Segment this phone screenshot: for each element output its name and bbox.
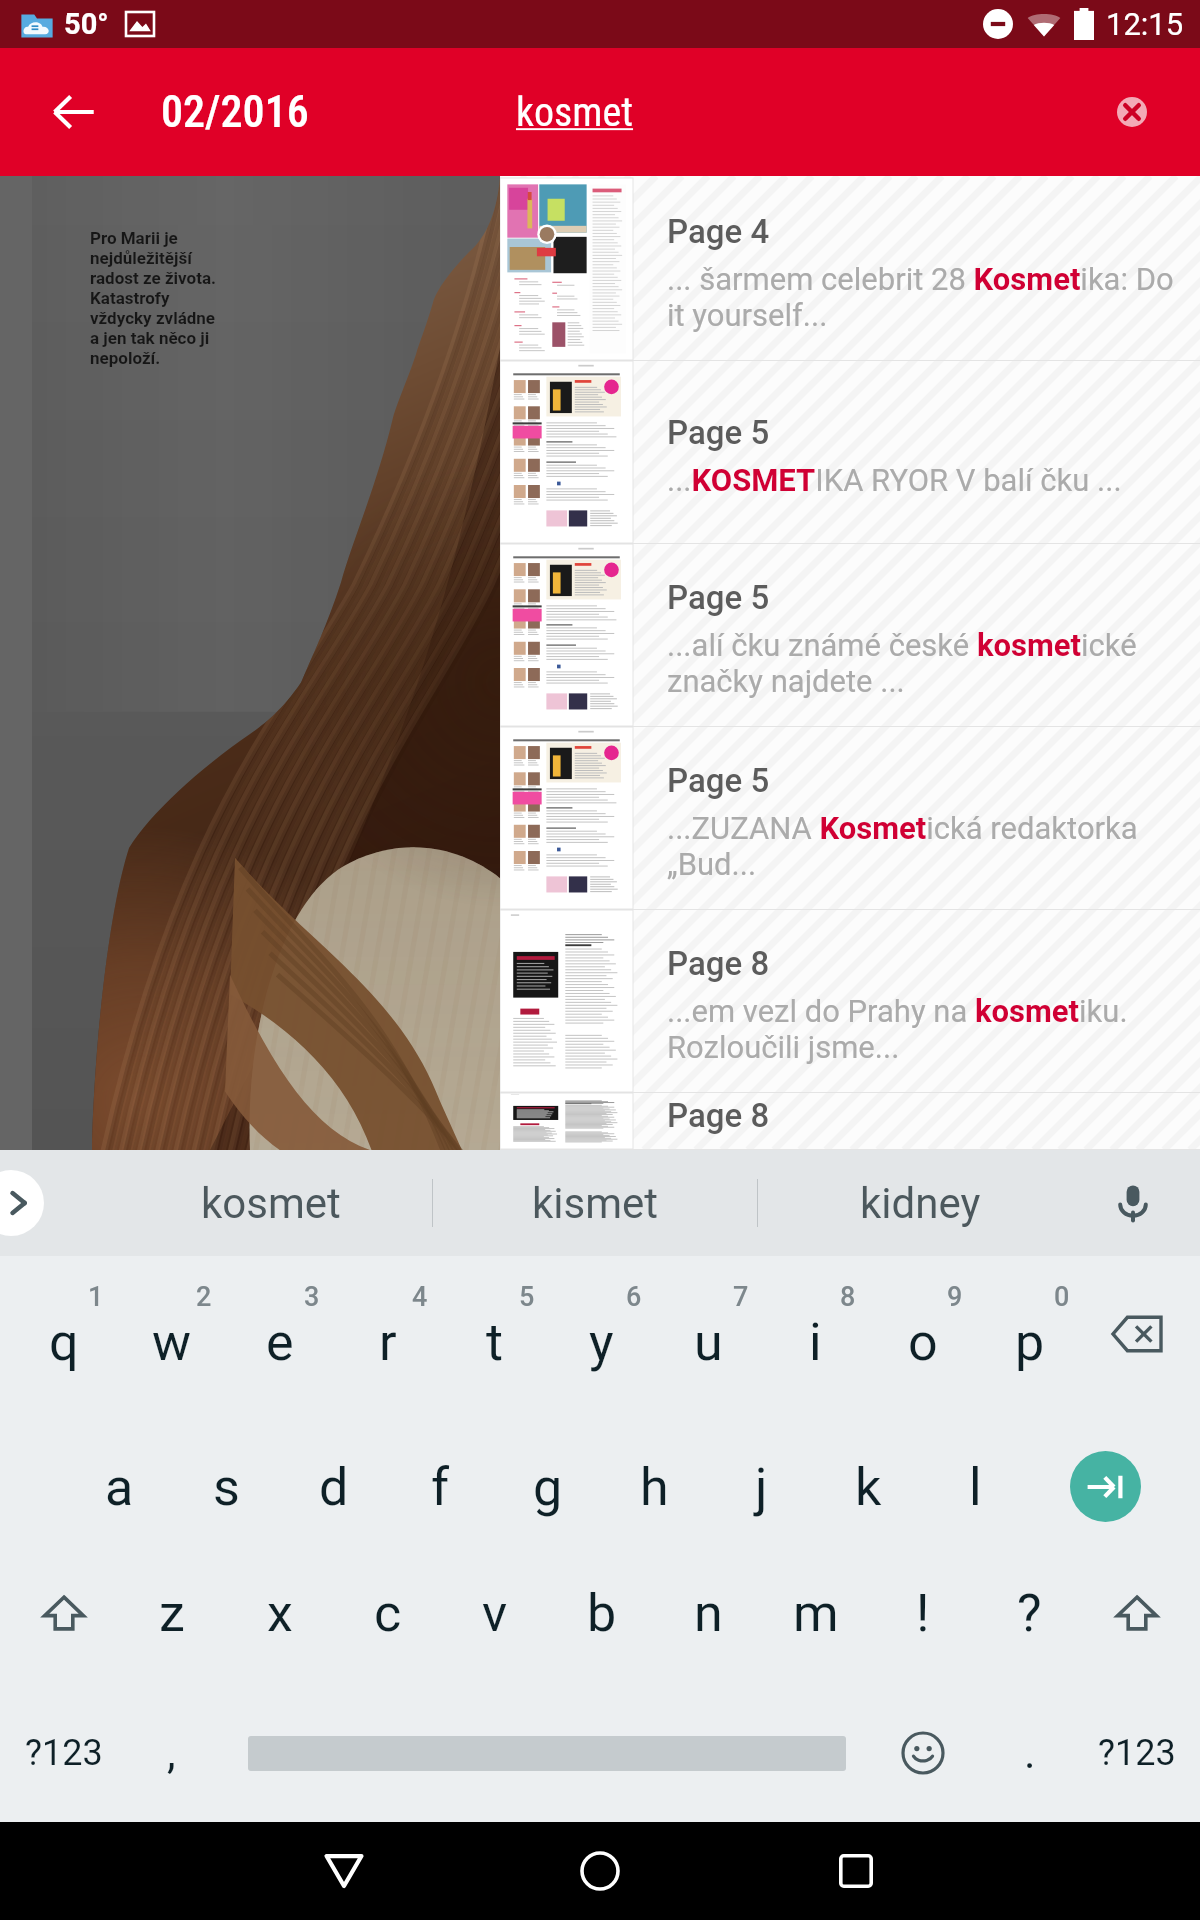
button[interactable]: kosmet — [109, 1150, 432, 1256]
button[interactable]: Backspace — [1083, 1256, 1190, 1412]
button[interactable]: Clear search — [1106, 86, 1158, 138]
staticText: ...alí čku známé české kosmetické značky… — [667, 627, 1180, 699]
button[interactable]: w — [118, 1256, 226, 1412]
staticText: u — [694, 1312, 723, 1373]
staticText: Pro Marii je nejdůležitější radost ze ži… — [90, 228, 217, 368]
button[interactable]: m — [762, 1550, 869, 1684]
button[interactable]: d — [280, 1412, 387, 1550]
button[interactable]: y — [548, 1256, 655, 1412]
staticText: ...ZUZANA Kosmetická redaktorka „Bud... — [667, 810, 1180, 882]
button[interactable]: v — [441, 1550, 548, 1684]
staticText: c — [374, 1583, 402, 1644]
staticText: kosmet — [516, 89, 634, 136]
button[interactable]: Page 8 — [500, 1093, 1200, 1150]
button[interactable]: , — [118, 1684, 225, 1822]
staticText: , — [167, 1727, 176, 1779]
staticText: 8 — [840, 1281, 856, 1313]
staticText: Page 5 — [667, 578, 770, 617]
staticText: 12:15 — [1106, 6, 1184, 42]
staticText: s — [213, 1457, 240, 1518]
staticText: i — [809, 1312, 822, 1373]
button[interactable]: t — [441, 1256, 548, 1412]
button[interactable]: Page 4 — [500, 178, 1200, 361]
staticText: e — [266, 1312, 294, 1373]
button[interactable]: More suggestions — [0, 1170, 44, 1236]
button[interactable]: r — [334, 1256, 441, 1412]
button[interactable]: n — [655, 1550, 762, 1684]
button[interactable]: z — [118, 1550, 226, 1684]
button[interactable]: i — [762, 1256, 869, 1412]
button[interactable]: s — [173, 1412, 280, 1550]
staticText: h — [640, 1457, 669, 1518]
staticText: w — [152, 1312, 192, 1373]
staticText: g — [533, 1457, 563, 1518]
staticText: 0 — [1054, 1281, 1070, 1313]
staticText: ?123 — [25, 1732, 103, 1774]
staticText: ...KOSMETIKA RYOR V balí čku ... — [667, 462, 1122, 498]
button[interactable]: Page 5 — [500, 361, 1200, 544]
staticText: 3 — [304, 1281, 320, 1313]
button[interactable]: Home — [545, 1822, 655, 1920]
button[interactable]: Page 8 — [500, 910, 1200, 1093]
button[interactable]: a — [65, 1412, 173, 1550]
button[interactable]: Space — [225, 1684, 869, 1822]
staticText: 2 — [196, 1281, 212, 1313]
staticText: l — [969, 1457, 982, 1518]
button[interactable]: Recent apps — [801, 1822, 911, 1920]
button[interactable]: Enter — [1029, 1412, 1190, 1550]
button[interactable]: b — [548, 1550, 655, 1684]
staticText: q — [49, 1312, 79, 1373]
button[interactable]: l — [922, 1412, 1029, 1550]
button[interactable]: ? — [976, 1550, 1083, 1684]
staticText: Page 8 — [667, 944, 770, 983]
staticText: z — [159, 1583, 185, 1644]
button[interactable]: p — [976, 1256, 1083, 1412]
button[interactable]: kismet — [433, 1150, 757, 1256]
staticText: ... šarmem celebrit 28 Kosmetika: Do it … — [667, 261, 1180, 333]
button[interactable]: kosmet — [516, 89, 634, 136]
staticText: r — [379, 1312, 397, 1373]
staticText: k — [855, 1457, 882, 1518]
button[interactable]: e — [226, 1256, 334, 1412]
staticText: ?123 — [1098, 1732, 1176, 1774]
staticText: ...em vezl do Prahy na kosmetiku. Rozlou… — [667, 993, 1180, 1065]
button[interactable]: Page 5 — [500, 727, 1200, 910]
staticText: Page 5 — [667, 761, 770, 800]
staticText: p — [1015, 1312, 1045, 1373]
button[interactable]: kidney — [758, 1150, 1082, 1256]
button[interactable]: ! — [869, 1550, 976, 1684]
staticText: kidney — [860, 1179, 981, 1228]
button[interactable]: g — [494, 1412, 601, 1550]
staticText: 6 — [626, 1281, 642, 1313]
button[interactable]: u — [655, 1256, 762, 1412]
button[interactable]: k — [815, 1412, 922, 1550]
button[interactable]: c — [334, 1550, 441, 1684]
button[interactable]: ?123 — [10, 1684, 118, 1822]
staticText: ? — [1017, 1583, 1042, 1644]
button[interactable]: h — [601, 1412, 708, 1550]
button[interactable]: q — [10, 1256, 118, 1412]
button[interactable]: Back — [289, 1822, 399, 1920]
button[interactable]: Emoji — [869, 1684, 976, 1822]
button[interactable]: Page 5 — [500, 544, 1200, 727]
staticText: f — [431, 1457, 450, 1518]
button[interactable]: Back — [38, 76, 110, 148]
button[interactable]: Voice input — [1102, 1172, 1164, 1234]
staticText: 7 — [733, 1281, 749, 1313]
staticText: ! — [916, 1583, 930, 1644]
staticText: kismet — [532, 1179, 659, 1228]
button[interactable]: Shift — [1083, 1550, 1190, 1684]
button[interactable]: f — [387, 1412, 494, 1550]
staticText: 9 — [947, 1281, 963, 1313]
button[interactable]: o — [869, 1256, 976, 1412]
button[interactable]: Shift — [10, 1550, 118, 1684]
staticText: Page 5 — [667, 413, 770, 452]
staticText: Page 4 — [667, 212, 770, 251]
button[interactable]: x — [226, 1550, 334, 1684]
button[interactable]: ?123 — [1083, 1684, 1190, 1822]
staticText: d — [319, 1457, 349, 1518]
staticText: kosmet — [201, 1179, 341, 1228]
button[interactable]: . — [976, 1684, 1083, 1822]
button[interactable]: j — [708, 1412, 815, 1550]
staticText: x — [267, 1583, 293, 1644]
